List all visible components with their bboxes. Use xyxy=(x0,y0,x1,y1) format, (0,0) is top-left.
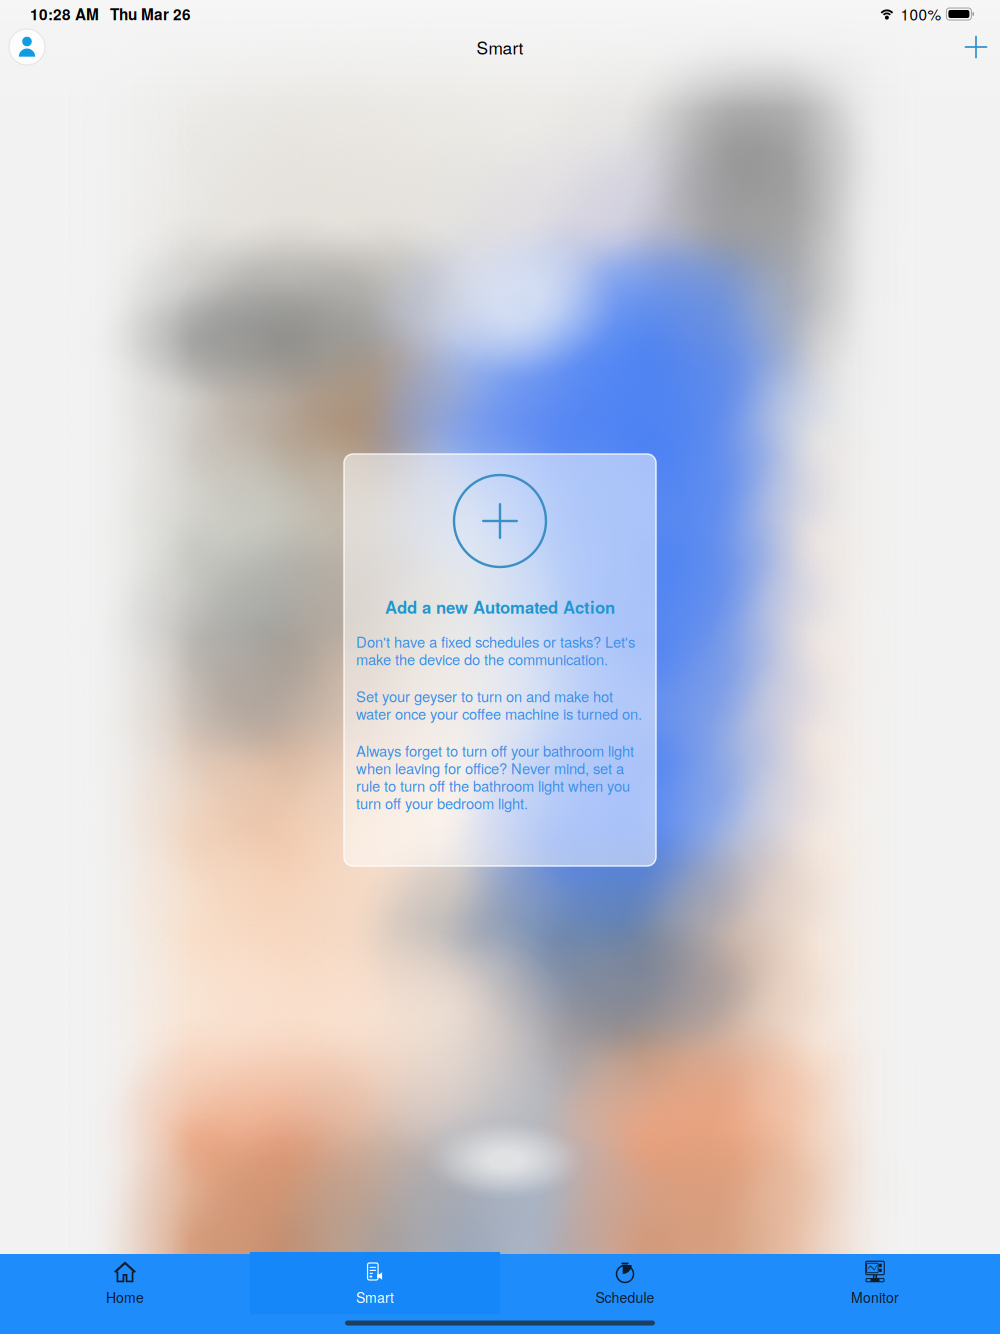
staticText: Add a new Automated Action xyxy=(385,595,615,619)
staticText: Set your geyser to turn on and make hot … xyxy=(356,685,642,724)
button[interactable]: Account xyxy=(5,25,49,69)
button[interactable]: Monitor xyxy=(750,1252,1000,1314)
staticText: Monitor xyxy=(851,1287,899,1307)
staticText: 100% xyxy=(900,3,941,25)
staticText: Home xyxy=(106,1287,144,1307)
staticText: Thu Mar 26 xyxy=(110,3,191,25)
button[interactable]: Add automation xyxy=(954,25,998,69)
button[interactable]: Smart xyxy=(250,1252,500,1314)
staticText: Smart xyxy=(476,35,523,59)
staticText: Always forget to turn off your bathroom … xyxy=(356,740,634,813)
button[interactable]: Schedule xyxy=(500,1252,750,1314)
staticText: Schedule xyxy=(595,1287,654,1307)
staticText: Smart xyxy=(356,1287,394,1307)
staticText: Don't have a fixed schedules or tasks? L… xyxy=(356,631,635,669)
staticText: 10:28 AM xyxy=(30,3,99,25)
button[interactable]: Home xyxy=(0,1252,250,1314)
